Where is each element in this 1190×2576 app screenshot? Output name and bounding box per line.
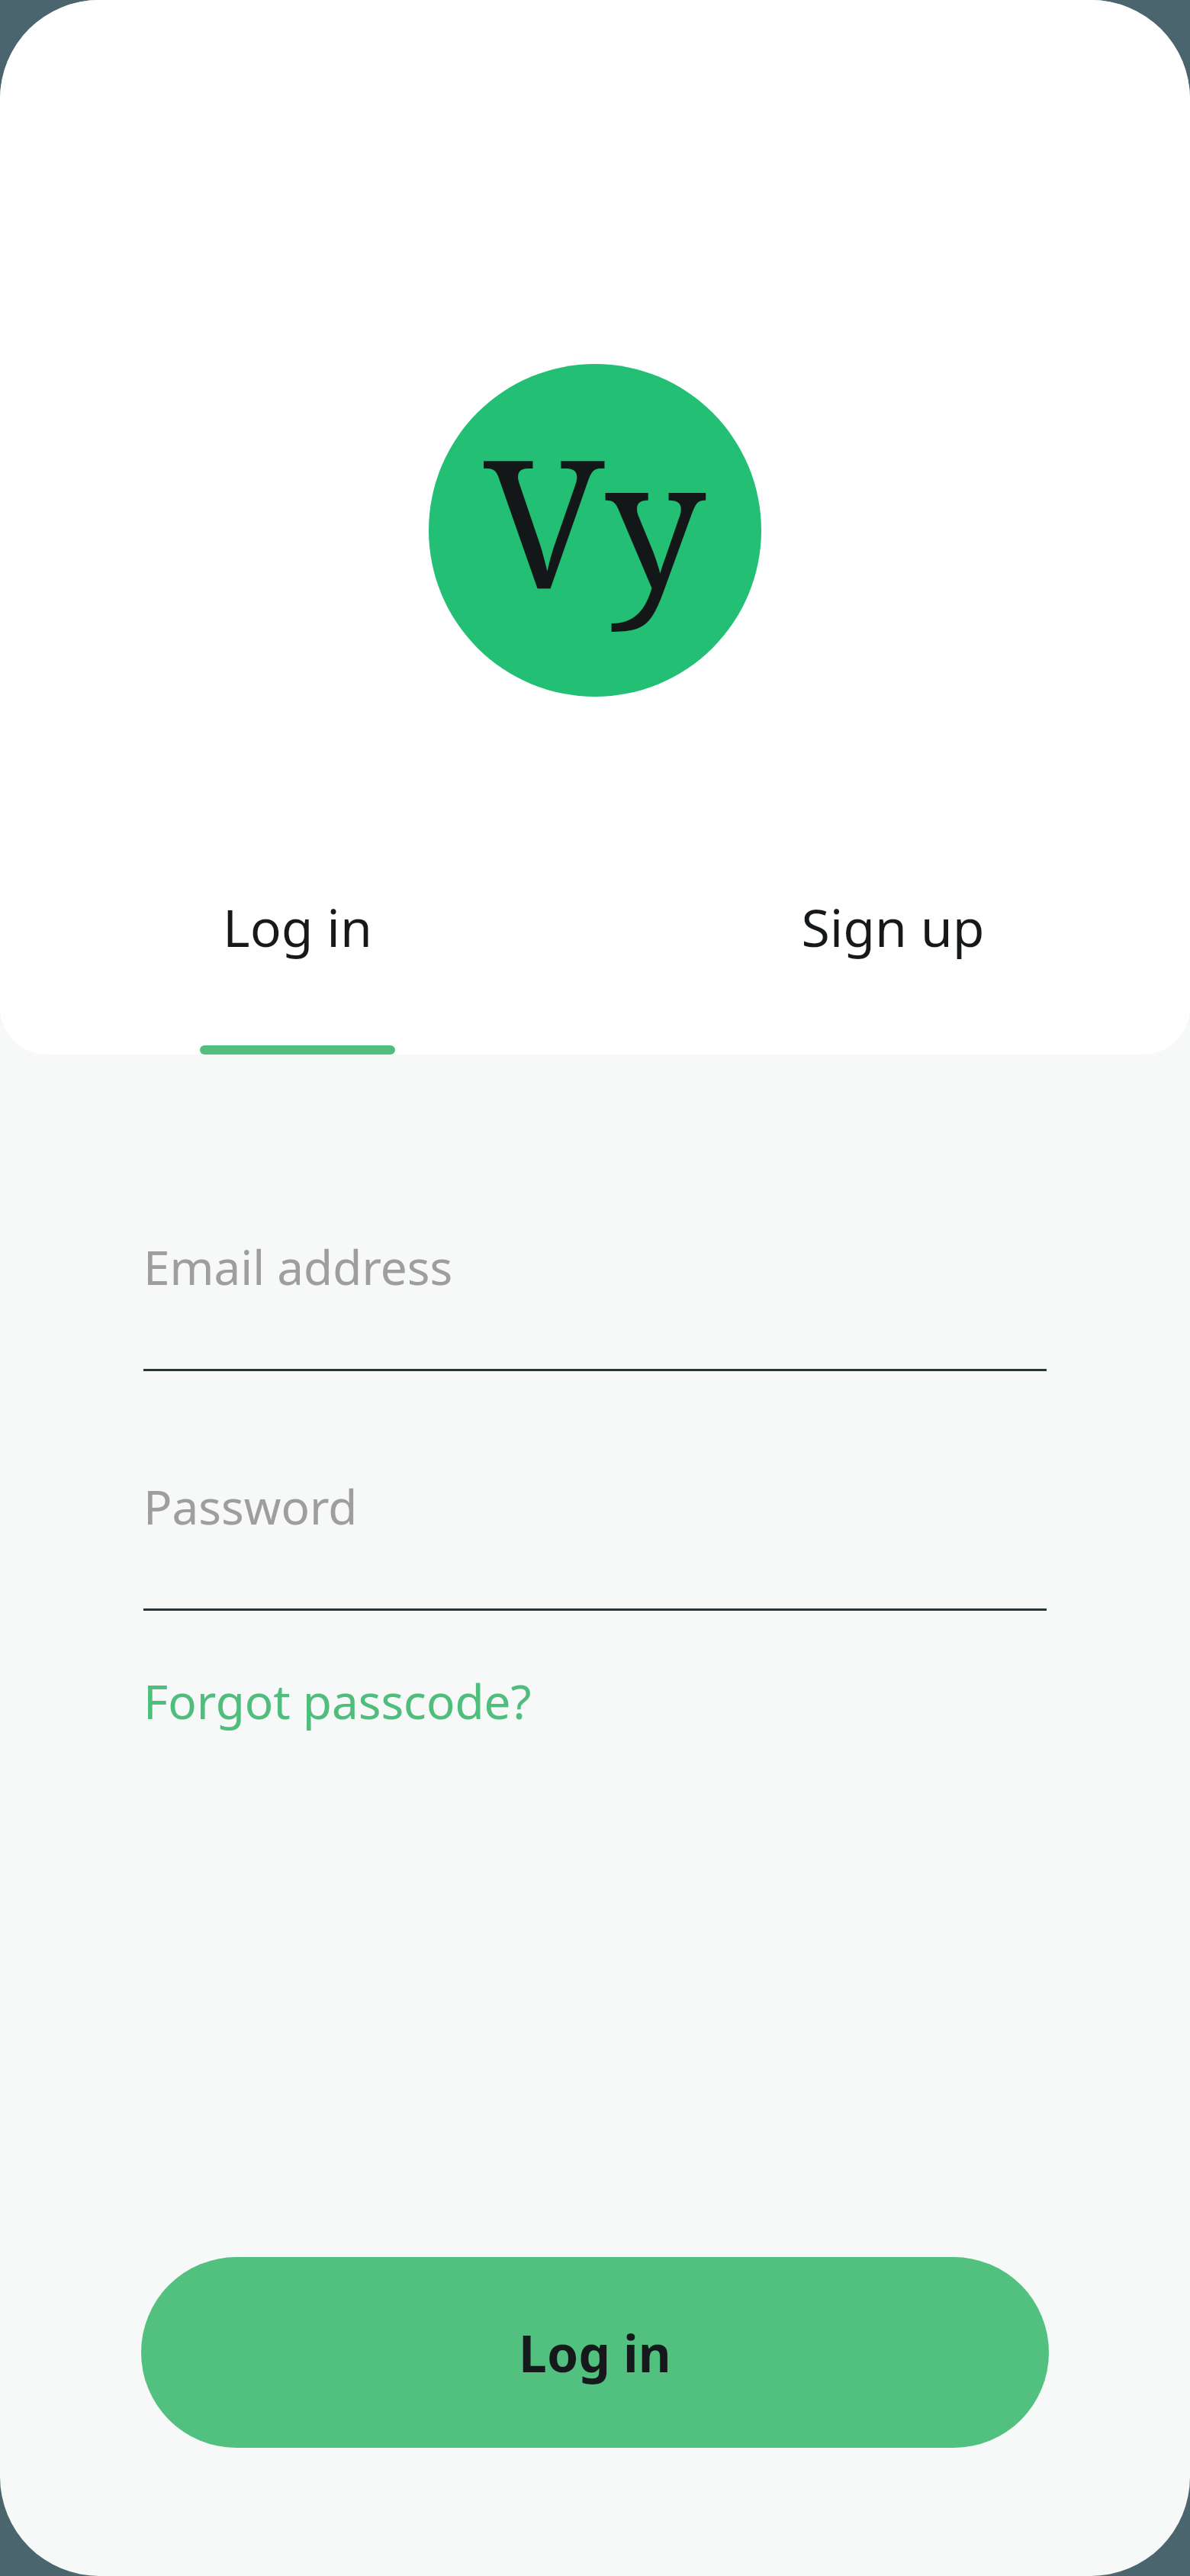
staticText: Forgot passcode? xyxy=(143,1669,532,1733)
staticText: Password xyxy=(143,1474,358,1538)
staticText: Log in xyxy=(223,891,372,962)
button[interactable]: Log in xyxy=(141,2257,1049,2448)
staticText: Sign up xyxy=(801,891,985,962)
button[interactable]: Forgot passcode? xyxy=(143,1658,532,1744)
staticText: Email address xyxy=(143,1235,453,1299)
button[interactable]: Sign up xyxy=(595,855,1190,1055)
staticText: Log in xyxy=(519,2318,671,2387)
button[interactable]: Log in xyxy=(0,855,595,1055)
staticText: Vy xyxy=(484,398,706,642)
